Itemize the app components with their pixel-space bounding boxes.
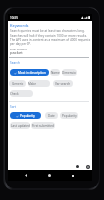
button[interactable]: Back — [21, 170, 31, 181]
button[interactable]: Date — [45, 112, 58, 119]
staticText: Enter keyword — [10, 47, 27, 50]
staticText: Most in description — [18, 71, 46, 75]
staticText: Popularity — [62, 114, 77, 118]
button[interactable]: Popularity — [60, 112, 78, 119]
button[interactable]: Last updated — [10, 122, 30, 129]
staticText: Var search — [55, 82, 71, 86]
staticText: Popularity — [20, 114, 35, 118]
button[interactable]: Dimensions — [62, 69, 77, 76]
button[interactable]: First submitted — [31, 122, 55, 129]
staticText: Generic — [12, 82, 24, 86]
button[interactable]: Home — [44, 170, 54, 181]
button[interactable]: Dark theme — [75, 164, 80, 169]
staticText: Search queries must be at least two char… — [10, 29, 91, 45]
staticText: packet — [10, 50, 23, 56]
button[interactable]: Settings — [85, 164, 90, 169]
staticText: Dimensions — [62, 71, 77, 75]
staticText: Keywords — [10, 23, 29, 28]
staticText: Check keywords — [10, 92, 33, 96]
button[interactable]: Var search — [53, 80, 73, 87]
button[interactable]: Generic — [9, 80, 26, 87]
staticText: Name — [51, 71, 60, 75]
staticText: 10:35 — [10, 16, 18, 20]
button[interactable]: Name — [50, 69, 60, 76]
button[interactable]: Check keywords — [10, 90, 33, 97]
staticText: Date — [48, 114, 55, 118]
staticText: Last updated — [11, 124, 30, 128]
button[interactable]: Popularity — [10, 112, 41, 119]
button[interactable]: Most in description — [10, 69, 49, 76]
button[interactable]: Make duplicate — [28, 80, 50, 87]
staticText: Search — [10, 61, 20, 65]
staticText: Sort — [10, 105, 16, 109]
staticText: Make duplicate — [28, 82, 50, 86]
button[interactable]: Recent apps — [68, 170, 78, 181]
staticText: First submitted — [32, 124, 54, 128]
